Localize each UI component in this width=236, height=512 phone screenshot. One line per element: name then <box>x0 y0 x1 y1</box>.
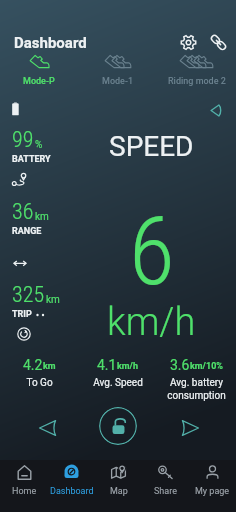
staticText: km <box>35 211 49 223</box>
button[interactable]: My page <box>189 460 236 512</box>
staticText: 36 <box>12 199 34 225</box>
staticText: Mode-1 <box>102 76 133 87</box>
button[interactable]: Riding mode 2 <box>157 55 236 87</box>
button[interactable]: Mode-1 <box>78 55 157 87</box>
button[interactable]: Dashboard <box>48 460 95 512</box>
staticText: Share <box>154 486 177 497</box>
staticText: km <box>43 361 56 372</box>
staticText: km/10% <box>190 361 223 372</box>
staticText: Dashboard <box>50 486 94 497</box>
button[interactable]: Home <box>0 460 48 512</box>
staticText: % <box>35 139 43 151</box>
staticText: My page <box>195 486 230 497</box>
staticText: 99 <box>12 127 34 153</box>
staticText: 4.1 <box>97 357 117 373</box>
staticText: km/h <box>107 300 196 345</box>
button[interactable]: Previous <box>31 411 64 444</box>
staticText: Dashboard <box>14 34 87 52</box>
staticText: Home <box>12 486 37 497</box>
button[interactable]: Connect <box>206 30 230 54</box>
staticText: km <box>46 294 60 306</box>
button[interactable]: Settings <box>176 30 200 54</box>
staticText: TRIP <box>12 309 32 320</box>
staticText: 325 <box>12 282 45 308</box>
staticText: Riding mode 2 <box>168 76 226 87</box>
button[interactable]: Share <box>142 460 189 512</box>
staticText: 6 <box>129 197 175 307</box>
button[interactable]: Unlock <box>99 407 137 445</box>
staticText: Avg. battery consumption <box>167 377 226 401</box>
staticText: RANGE <box>12 226 42 237</box>
button[interactable]: Mode-P <box>0 55 78 87</box>
staticText: km/h <box>117 361 139 372</box>
staticText: Avg. Speed <box>93 377 143 389</box>
staticText: Mode-P <box>23 76 55 87</box>
staticText: 3.6 <box>170 357 190 373</box>
staticText: 4.2 <box>23 357 43 373</box>
button[interactable]: Reset trip <box>15 325 32 342</box>
staticText: SPEED <box>109 130 194 163</box>
staticText: BATTERY <box>12 154 51 165</box>
button[interactable]: Map <box>95 460 142 512</box>
button[interactable]: Next <box>173 411 206 444</box>
staticText: To Go <box>26 377 53 389</box>
staticText: Map <box>110 486 128 497</box>
